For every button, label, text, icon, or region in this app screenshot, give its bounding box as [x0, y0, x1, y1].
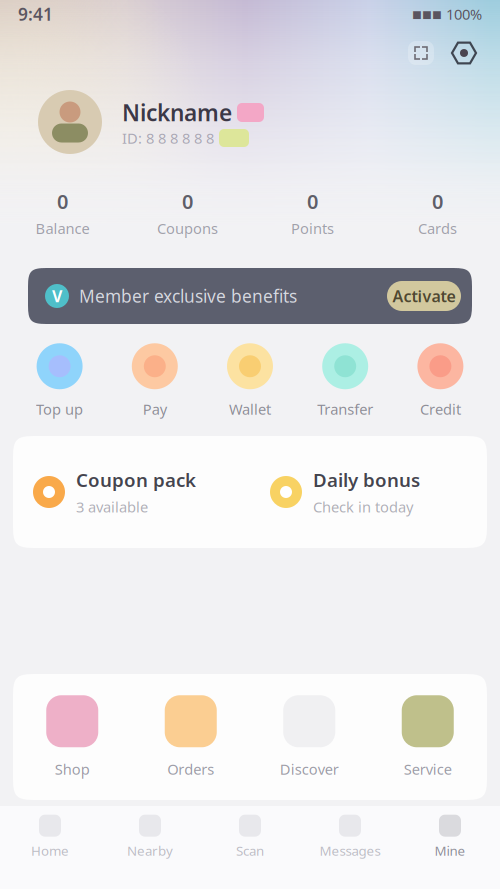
staticText: Pay [143, 399, 167, 419]
button[interactable]: Mine [400, 806, 500, 868]
button[interactable]: Pay [107, 332, 202, 430]
button[interactable]: 0 [0, 178, 125, 248]
button[interactable]: Scan [200, 806, 300, 868]
button[interactable]: 0 [250, 178, 375, 248]
staticText: 0 [307, 188, 318, 215]
staticText: Service [404, 759, 452, 779]
button[interactable]: 0 [125, 178, 250, 248]
button[interactable]: Scan QR code [406, 39, 436, 67]
button[interactable]: Wallet [202, 332, 298, 430]
staticText: Discover [280, 759, 339, 779]
staticText: Mine [434, 842, 465, 859]
button[interactable]: 0 [375, 178, 500, 248]
button[interactable]: Home [0, 806, 100, 868]
button[interactable]: Transfer [298, 332, 393, 430]
button[interactable]: Credit [393, 332, 488, 430]
staticText: Messages [319, 842, 380, 859]
button[interactable]: V [0, 248, 500, 332]
staticText: 9:41 [18, 2, 53, 25]
staticText: Nearby [127, 842, 173, 859]
button[interactable]: Nearby [100, 806, 200, 868]
button[interactable]: Profile photo [38, 90, 102, 154]
staticText: 0 [57, 188, 68, 215]
staticText: Check in today [313, 497, 413, 517]
staticText: Nickname [122, 97, 232, 127]
staticText: ◼︎◼︎◼︎ [412, 7, 442, 21]
staticText: V [52, 285, 62, 307]
staticText: Balance [35, 218, 89, 238]
staticText: Transfer [317, 399, 373, 419]
staticText: Daily bonus [313, 467, 420, 492]
button[interactable]: Service [368, 674, 487, 800]
staticText: Credit [420, 399, 461, 419]
button[interactable]: Shop [13, 674, 131, 800]
staticText: 3 available [76, 497, 148, 517]
staticText: Scan [236, 842, 264, 859]
staticText: Activate [392, 285, 455, 307]
staticText: Top up [36, 399, 83, 419]
button[interactable]: Top up [12, 332, 107, 430]
staticText: Coupons [157, 218, 218, 238]
staticText: Shop [55, 759, 90, 779]
staticText: ID: 8 8 8 8 8 8 [122, 128, 214, 148]
staticText: 100% [446, 4, 482, 24]
button[interactable]: Coupon pack [13, 436, 250, 548]
staticText: Member exclusive benefits [79, 284, 297, 307]
staticText: Home [31, 842, 69, 859]
staticText: 0 [432, 188, 443, 215]
button[interactable]: Messages [300, 806, 400, 868]
staticText: Points [291, 218, 334, 238]
staticText: Cards [418, 218, 457, 238]
button[interactable]: Discover [250, 674, 368, 800]
button[interactable]: Orders [131, 674, 250, 800]
staticText: Wallet [229, 399, 271, 419]
button[interactable]: Settings [450, 39, 478, 67]
staticText: Coupon pack [76, 467, 196, 492]
staticText: 0 [182, 188, 193, 215]
staticText: Orders [167, 759, 214, 779]
button[interactable]: Daily bonus [250, 436, 487, 548]
